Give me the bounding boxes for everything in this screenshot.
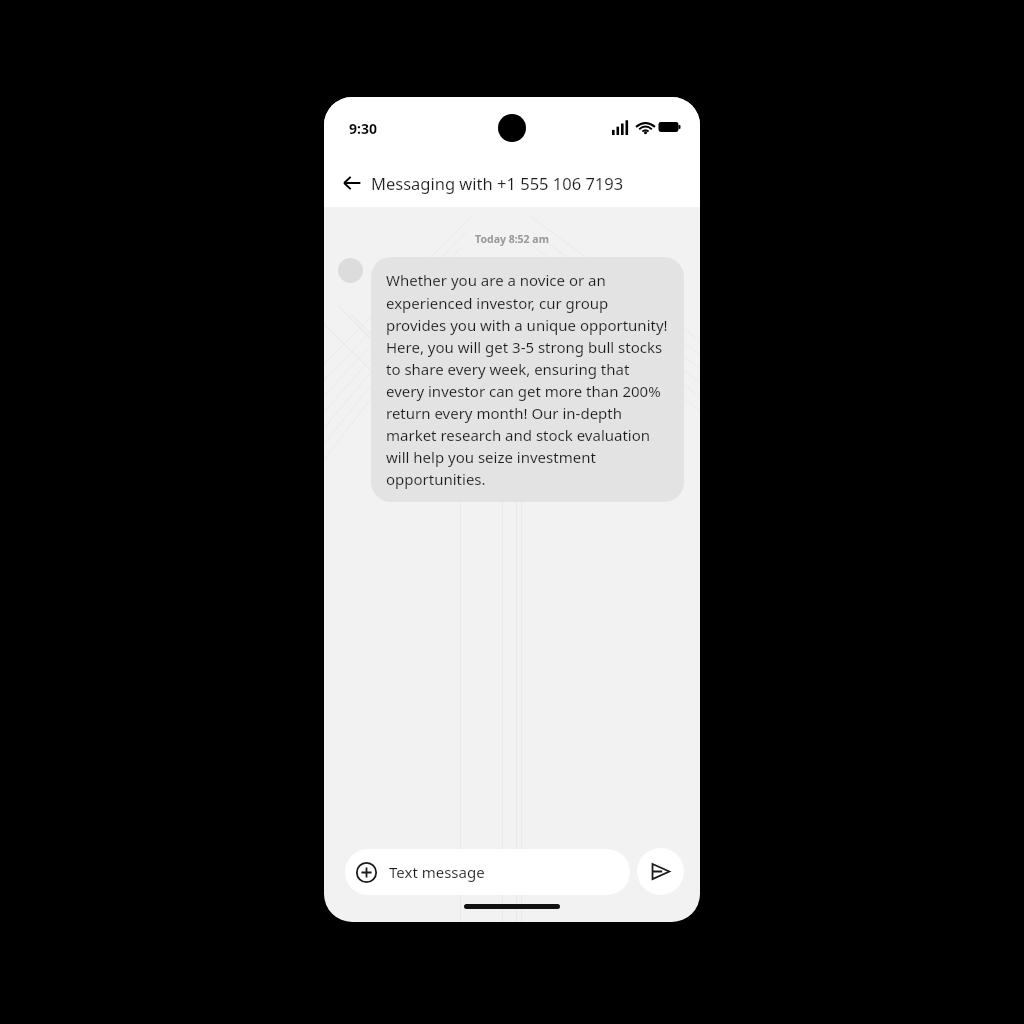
staticText: Today 8:52 am	[475, 232, 549, 246]
button[interactable]: Whether you are a novice or an experienc…	[371, 257, 684, 502]
staticText: Whether you are a novice or an experienc…	[386, 270, 669, 489]
button[interactable]: Send	[637, 848, 684, 895]
staticText: Text message	[389, 862, 485, 882]
button[interactable]: Back	[332, 163, 372, 203]
button[interactable]: Text message	[345, 849, 630, 895]
staticText: 9:30	[349, 119, 377, 138]
staticText: Messaging with +1 555 106 7193	[371, 172, 624, 194]
